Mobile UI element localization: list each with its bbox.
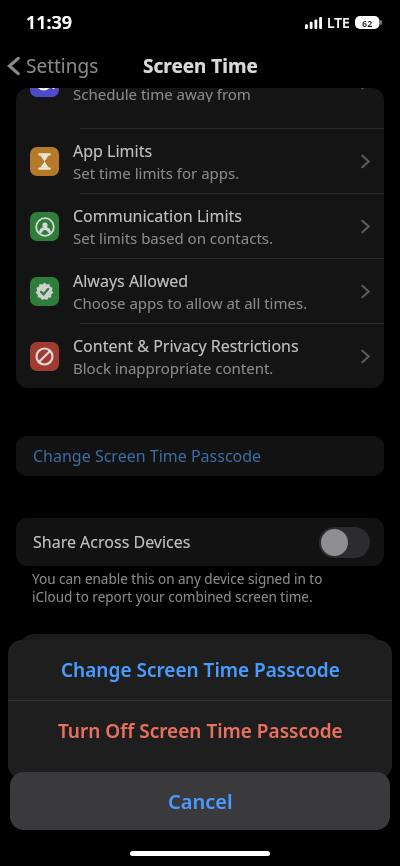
staticText: Choose apps to allow at all times. — [73, 293, 308, 313]
staticText: You can enable this on any device signed… — [32, 570, 323, 588]
staticText: Screen Time — [143, 53, 258, 79]
button[interactable]: Content & Privacy Restrictions — [16, 324, 384, 388]
staticText: Block inappropriate content. — [73, 358, 274, 378]
button[interactable]: Communication Limits — [16, 194, 384, 258]
button[interactable]: Change Screen Time Passcode — [16, 436, 384, 476]
button[interactable]: Change Screen Time Passcode — [8, 640, 392, 700]
staticText: 11:39 — [26, 10, 73, 35]
button[interactable]: Turn Off Screen Time Passcode — [8, 701, 392, 761]
staticText: Set time limits for apps. — [73, 163, 240, 183]
staticText: 62 — [362, 17, 373, 29]
staticText: Schedule time away from — [73, 88, 251, 102]
staticText: Change Screen Time Passcode — [61, 657, 340, 683]
staticText: Content & Privacy Restrictions — [73, 335, 299, 357]
button[interactable]: Settings — [0, 49, 107, 83]
staticText: LTE — [327, 13, 350, 32]
staticText: Turn Off Screen Time — [103, 755, 297, 779]
staticText: Communication Limits — [73, 205, 242, 227]
staticText: Turn Off Screen Time Passcode — [58, 718, 343, 744]
staticText: Cancel — [168, 788, 233, 815]
button[interactable]: App Limits — [16, 129, 384, 193]
staticText: Share Across Devices — [33, 531, 191, 553]
staticText: Set limits based on contacts. — [73, 228, 273, 248]
button[interactable]: Downtime — [16, 88, 384, 102]
button[interactable]: Always Allowed — [16, 259, 384, 323]
staticText: Settings — [26, 53, 99, 79]
staticText: Change Screen Time Passcode — [33, 445, 262, 467]
staticText: iCloud to report your combined screen ti… — [32, 588, 313, 606]
staticText: Always Allowed — [73, 270, 189, 292]
button[interactable]: Share Across Devices — [16, 518, 384, 566]
staticText: App Limits — [73, 140, 153, 162]
button[interactable]: Cancel — [10, 772, 390, 830]
